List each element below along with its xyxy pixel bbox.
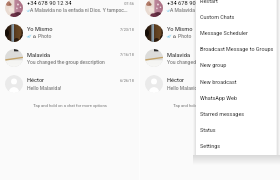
staticText: Malavida bbox=[167, 52, 259, 61]
staticText: You changed the group description bbox=[167, 59, 279, 67]
staticText: 07:56 bbox=[104, 1, 134, 7]
staticText: Héctor bbox=[167, 77, 259, 86]
staticText: Starred messages bbox=[200, 111, 278, 119]
button[interactable] bbox=[196, 25, 276, 41]
button[interactable] bbox=[196, 139, 276, 155]
button[interactable] bbox=[196, 42, 276, 58]
staticText: Malavida bbox=[27, 52, 119, 61]
button[interactable] bbox=[140, 0, 280, 21]
button[interactable] bbox=[196, 74, 276, 90]
button[interactable] bbox=[196, 0, 276, 9]
button[interactable] bbox=[196, 123, 276, 139]
staticText: Settings bbox=[200, 143, 278, 151]
staticText: Tap and hold on a chat for more options bbox=[145, 103, 275, 109]
staticText: New broadcast bbox=[200, 79, 278, 87]
button[interactable] bbox=[196, 106, 276, 122]
staticText: 6/26/18 bbox=[104, 78, 134, 84]
button[interactable] bbox=[140, 71, 280, 97]
staticText: WhatsApp Web bbox=[200, 95, 278, 103]
staticText: 7/16/18 bbox=[104, 52, 134, 58]
button[interactable] bbox=[0, 46, 140, 72]
button[interactable] bbox=[196, 90, 276, 106]
staticText: 7/23/18 bbox=[104, 27, 134, 33]
staticText: Hello Malavida! bbox=[27, 85, 139, 93]
button[interactable] bbox=[0, 71, 140, 97]
staticText: 7/23/18 bbox=[244, 27, 274, 33]
button[interactable] bbox=[196, 58, 276, 74]
staticText: Tap and hold on a chat for more options bbox=[5, 103, 135, 109]
staticText: New group bbox=[200, 62, 278, 70]
staticText: +34 678 90 12 34 bbox=[27, 0, 119, 9]
staticText: You changed the group description bbox=[27, 59, 139, 67]
button[interactable] bbox=[140, 20, 280, 46]
staticText: Photo bbox=[38, 33, 150, 41]
staticText: Restart bbox=[200, 0, 278, 6]
staticText: Custom Chats bbox=[200, 14, 278, 22]
button[interactable] bbox=[0, 20, 140, 46]
staticText: Status bbox=[200, 127, 278, 135]
button[interactable] bbox=[0, 0, 140, 21]
staticText: Hello Malavida! bbox=[167, 85, 279, 93]
staticText: Héctor bbox=[27, 77, 119, 86]
staticText: +34 678 90 12 34 bbox=[167, 0, 259, 9]
button[interactable] bbox=[196, 9, 276, 25]
staticText: A Malavida no la enfada ni Dios. Y tampo… bbox=[30, 7, 142, 15]
staticText: Yo Mismo bbox=[27, 26, 119, 35]
staticText: Yo Mismo bbox=[167, 26, 259, 35]
staticText: Photo bbox=[178, 33, 280, 41]
staticText: Broadcast Message to Groups bbox=[200, 46, 278, 54]
button[interactable] bbox=[140, 46, 280, 72]
staticText: A Malavida no la enfada ni Dios. Y tampo… bbox=[170, 7, 280, 15]
staticText: Message Scheduler bbox=[200, 30, 278, 38]
